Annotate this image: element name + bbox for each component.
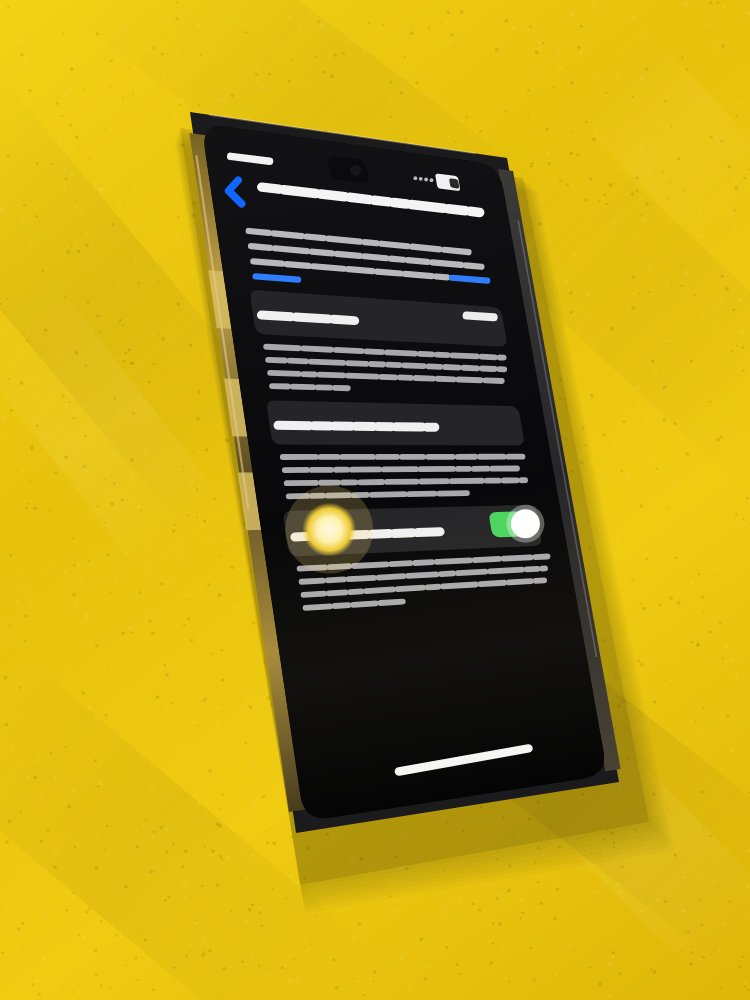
- button[interactable]: Battery health settings photo: [0, 0, 750, 1000]
